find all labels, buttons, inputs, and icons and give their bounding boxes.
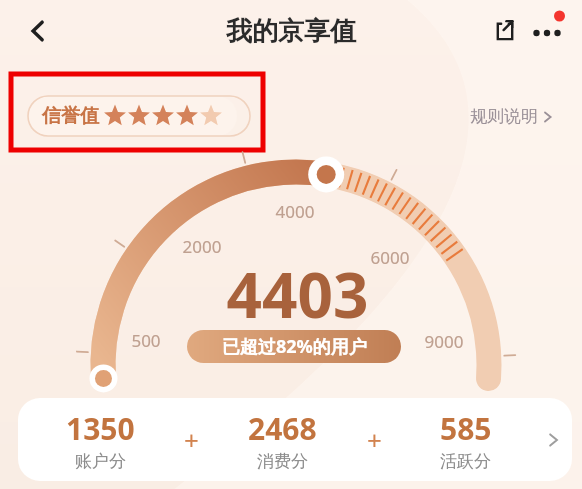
staticText: 4403 (190, 252, 405, 336)
button[interactable]: 1350 (18, 398, 572, 481)
staticText: 2000 (162, 235, 242, 258)
staticText: 信誉值 (42, 104, 99, 128)
staticText: 2468 (248, 408, 317, 449)
staticText: + (367, 422, 382, 457)
staticText: 规则说明 (470, 106, 538, 127)
staticText: 585 (440, 408, 492, 449)
button[interactable]: Back (14, 7, 62, 55)
staticText: 500 (106, 329, 186, 352)
staticText: 6000 (350, 246, 430, 269)
button[interactable]: 规则说明 (454, 100, 570, 133)
button[interactable]: 信誉值 (28, 96, 237, 136)
staticText: 4000 (255, 200, 335, 223)
staticText: 活跃分 (440, 451, 491, 472)
staticText: 账户分 (75, 451, 126, 472)
staticText: 9000 (404, 330, 484, 353)
button[interactable]: Share (484, 10, 526, 52)
button[interactable]: 已超过82%的用户 (187, 330, 401, 363)
staticText: 我的京享值 (226, 15, 356, 48)
button[interactable]: More options (526, 10, 568, 52)
staticText: 消费分 (257, 451, 308, 472)
staticText: 已超过82%的用户 (222, 334, 367, 359)
staticText: + (184, 422, 199, 457)
staticText: 1350 (66, 408, 135, 449)
